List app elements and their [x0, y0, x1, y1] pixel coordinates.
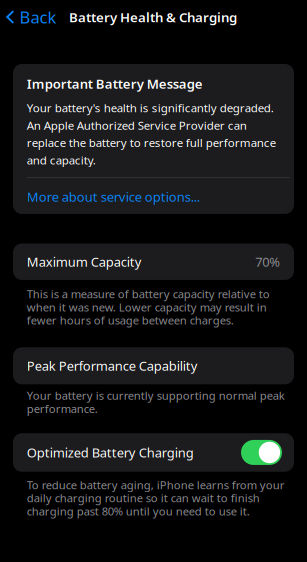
staticText: Back — [19, 6, 56, 28]
staticText: Maximum Capacity — [27, 253, 142, 270]
staticText: Important Battery Message — [27, 75, 203, 92]
button[interactable]: Back — [0, 0, 62, 34]
staticText: To reduce battery aging, iPhone learns f… — [27, 477, 285, 519]
staticText: Optimized Battery Charging — [27, 444, 194, 461]
button[interactable]: More about service options... — [27, 178, 280, 214]
staticText: More about service options... — [27, 188, 200, 206]
staticText: 70% — [255, 253, 280, 270]
button[interactable]: Optimized Battery Charging — [13, 433, 294, 472]
staticText: Your battery's health is significantly d… — [27, 100, 276, 168]
staticText: This is a measure of battery capacity re… — [27, 286, 270, 328]
staticText: Your battery is currently supporting nor… — [27, 388, 285, 416]
staticText: Peak Performance Capability — [27, 357, 198, 375]
staticText: Battery Health & Charging — [69, 8, 237, 26]
